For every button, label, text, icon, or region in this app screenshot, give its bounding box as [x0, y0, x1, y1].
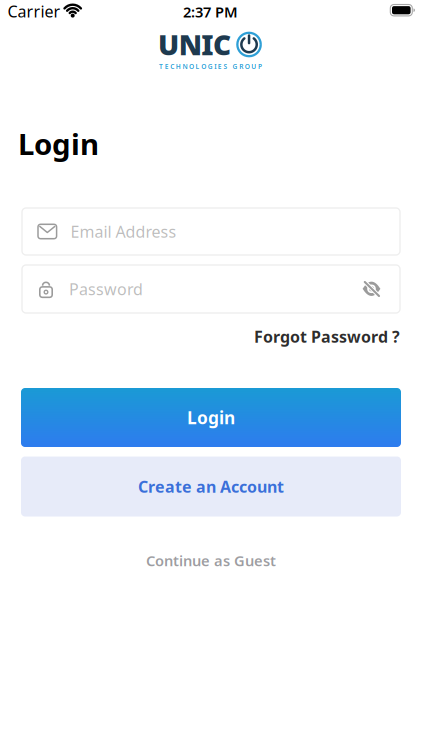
button[interactable]: Email Address [22, 208, 400, 255]
staticText: UNIC [158, 26, 231, 63]
staticText: Email Address [71, 221, 177, 242]
staticText: T [159, 62, 163, 71]
staticText: U [251, 62, 256, 71]
staticText: C [170, 62, 174, 71]
button[interactable]: Create an Account [21, 456, 401, 516]
button[interactable]: Login [21, 388, 401, 447]
staticText: 2:37 PM [183, 2, 238, 21]
staticText: G [208, 62, 213, 71]
staticText: Carrier [7, 1, 60, 22]
button[interactable]: Password [22, 265, 400, 313]
staticText: S [223, 62, 227, 71]
staticText: Password [69, 278, 143, 300]
staticText: P [258, 62, 262, 71]
staticText: O [201, 62, 206, 71]
button[interactable]: Continue as Guest [146, 551, 276, 570]
staticText: G [233, 62, 238, 71]
staticText: Login [187, 406, 235, 429]
staticText: Create an Account [138, 476, 284, 497]
staticText: N [182, 62, 187, 71]
staticText: O [245, 62, 250, 71]
staticText: Login [18, 124, 99, 163]
staticText: Continue as Guest [146, 551, 276, 570]
staticText: Forgot Password ? [254, 326, 400, 347]
staticText: H [176, 62, 181, 71]
staticText: E [165, 62, 169, 71]
staticText: L [195, 62, 199, 71]
staticText: R [239, 62, 243, 71]
staticText: I [214, 62, 216, 71]
staticText: O [189, 62, 194, 71]
staticText: E [218, 62, 222, 71]
button[interactable]: Forgot Password ? [254, 326, 400, 347]
